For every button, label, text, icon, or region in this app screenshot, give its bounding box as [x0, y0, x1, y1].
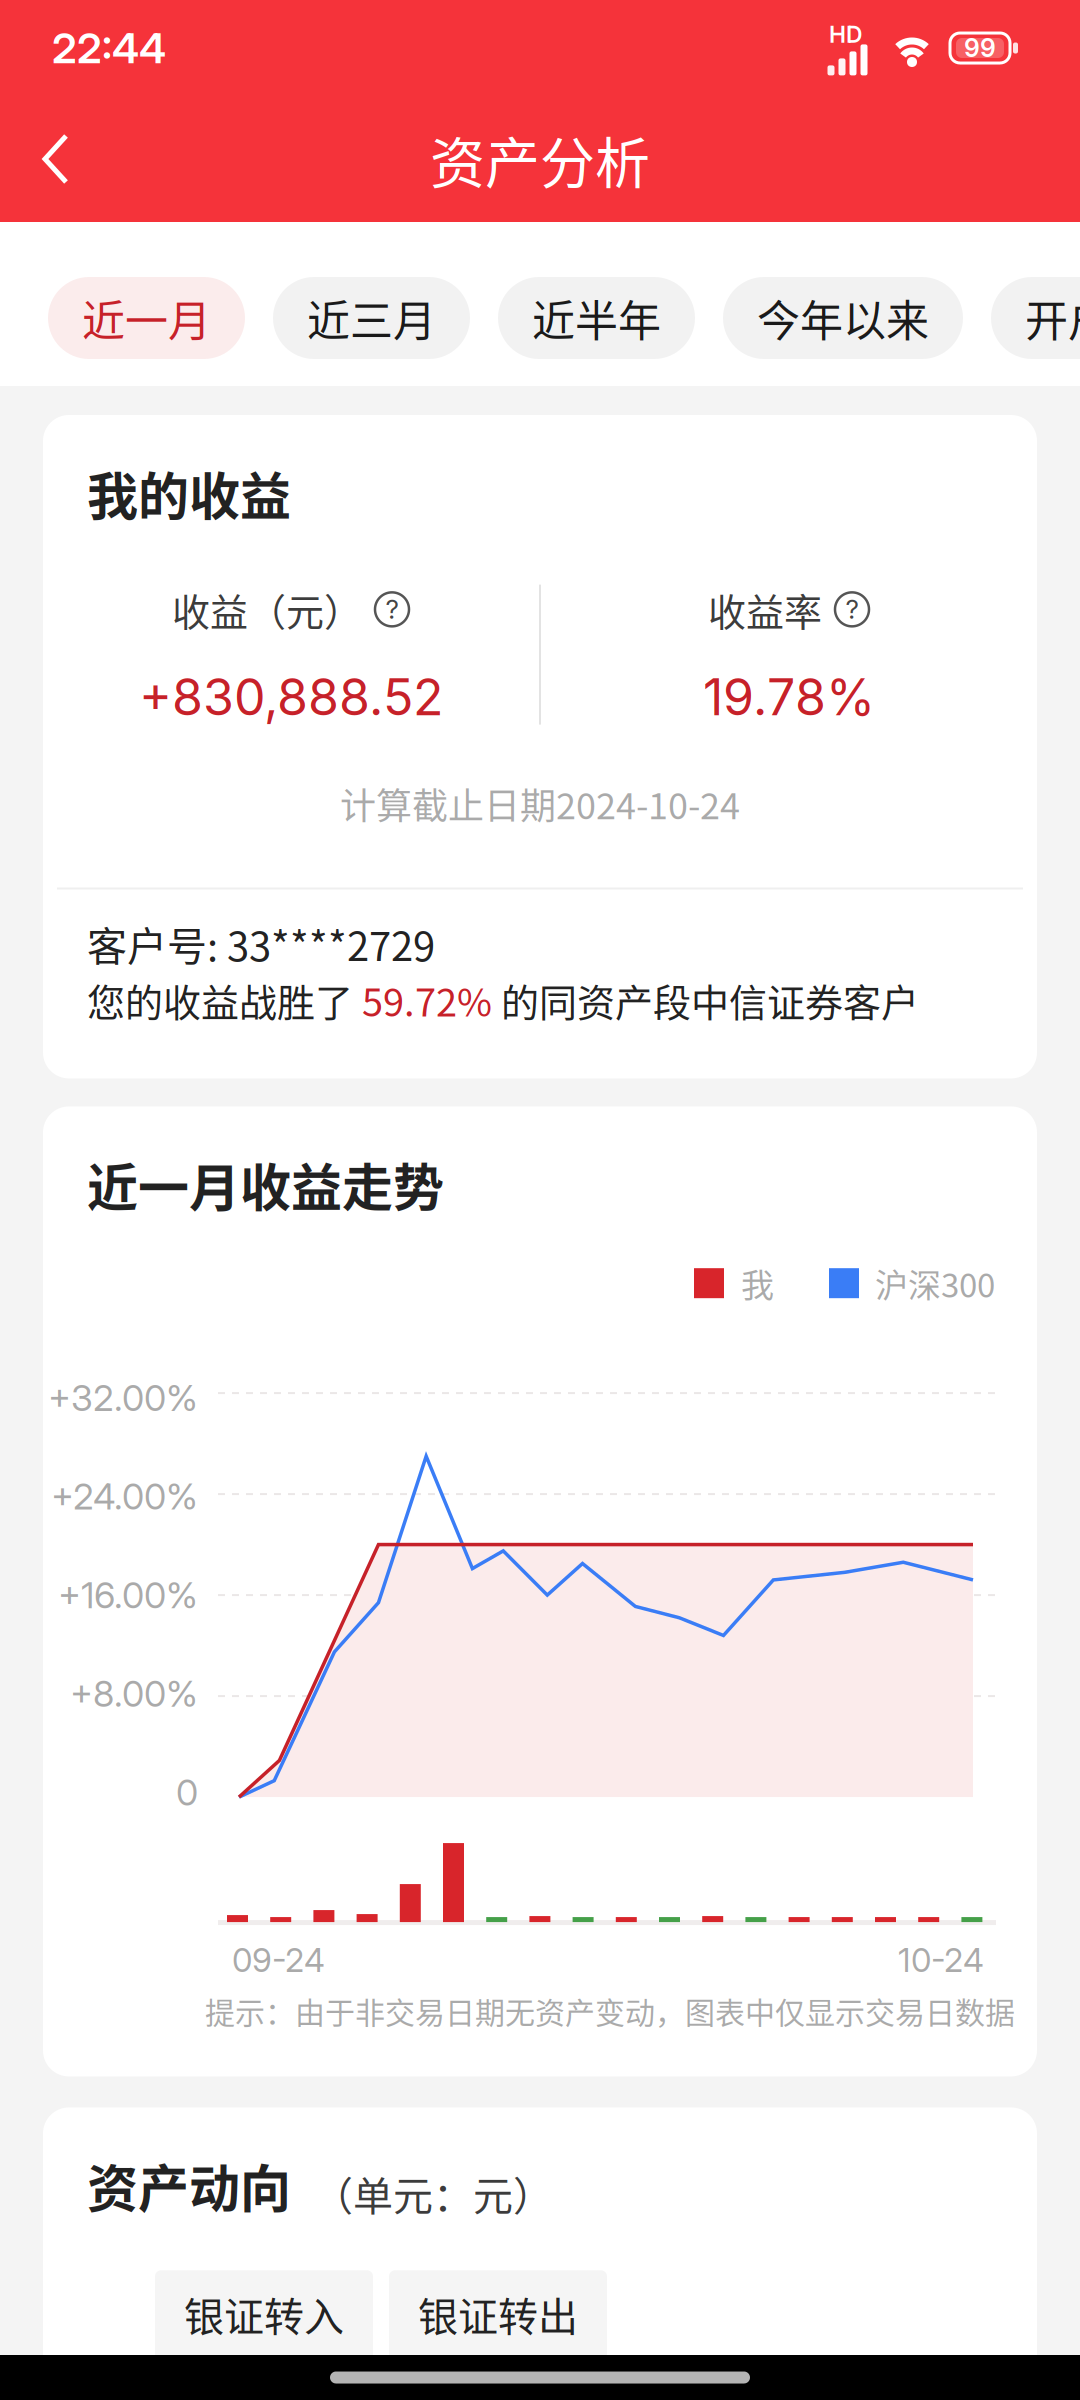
staticText: 09-24: [232, 1940, 325, 1980]
staticText: 计算截止日期2024-10-24: [340, 777, 740, 829]
staticText: HD: [829, 21, 863, 48]
staticText: 我: [741, 1259, 774, 1307]
button[interactable]: 近一月: [48, 277, 245, 359]
staticText: 22:44: [52, 23, 166, 73]
button[interactable]: 近三月: [273, 277, 470, 359]
staticText: ?: [845, 594, 858, 625]
staticText: 提示：由于非交易日期无资产变动，图表中仅显示交易日数据: [205, 1989, 1015, 2032]
staticText: 资产动向: [87, 2148, 291, 2222]
staticText: 的同资产段中信证券客户: [492, 972, 919, 1027]
staticText: 资产分析: [430, 119, 650, 199]
staticText: 今年以来: [757, 287, 929, 349]
staticText: 19.78%: [703, 667, 875, 727]
staticText: 银证转入: [184, 2285, 344, 2343]
staticText: 我的收益: [87, 456, 291, 530]
staticText: 近一月收益走势: [87, 1147, 444, 1221]
staticText: +830,888.52: [139, 667, 443, 727]
staticText: 近三月: [307, 287, 436, 349]
staticText: 99: [964, 33, 996, 63]
staticText: +32.00%: [48, 1376, 198, 1420]
staticText: 银证转出: [418, 2285, 578, 2343]
staticText: 客户号: 33****2729: [87, 914, 435, 972]
staticText: 59.72%: [362, 972, 492, 1027]
button[interactable]: 银证转入: [155, 2270, 373, 2400]
staticText: 0: [176, 1770, 198, 1814]
staticText: +16.00%: [58, 1573, 198, 1617]
button[interactable]: 银证转出: [389, 2270, 607, 2400]
button[interactable]: Back: [0, 104, 110, 214]
staticText: 您的收益战胜了: [87, 972, 362, 1027]
staticText: ?: [385, 594, 398, 625]
button[interactable]: 开户至今: [991, 277, 1080, 359]
staticText: 10-24: [898, 1940, 984, 1980]
button[interactable]: 今年以来: [723, 277, 963, 359]
staticText: 开户至今: [1025, 287, 1080, 349]
staticText: +8.00%: [70, 1672, 198, 1715]
staticText: +24.00%: [51, 1475, 198, 1518]
staticText: 收益率: [708, 582, 822, 637]
staticText: 收益（元）: [172, 582, 362, 637]
staticText: 近一月: [82, 287, 211, 349]
button[interactable]: 近半年: [498, 277, 695, 359]
staticText: （单元：元）: [313, 2164, 553, 2222]
staticText: 近半年: [532, 287, 661, 349]
staticText: 沪深300: [875, 1259, 995, 1307]
staticText: 30.67792: [413, 2357, 582, 2400]
